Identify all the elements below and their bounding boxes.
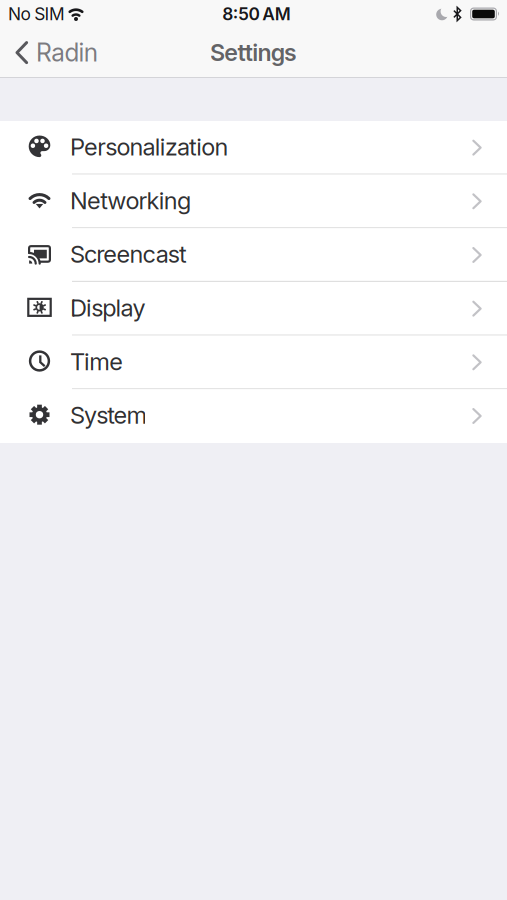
staticText: Time [70, 347, 123, 376]
staticText: Settings [210, 38, 297, 67]
staticText: System [70, 401, 147, 429]
button[interactable]: Radin [0, 38, 98, 67]
staticText: Personalization [70, 132, 228, 161]
button[interactable]: Display [0, 282, 507, 336]
button[interactable]: Time [0, 336, 507, 389]
staticText: Radin [36, 38, 98, 67]
staticText: Networking [70, 186, 191, 215]
button[interactable]: Personalization [0, 121, 507, 175]
staticText: Display [70, 293, 146, 322]
button[interactable]: Networking [0, 175, 507, 228]
staticText: 8:50 AM [222, 3, 291, 24]
staticText: Screencast [70, 240, 187, 268]
staticText: No SIM [8, 3, 65, 24]
button[interactable]: Screencast [0, 228, 507, 282]
button[interactable]: System [0, 389, 507, 443]
